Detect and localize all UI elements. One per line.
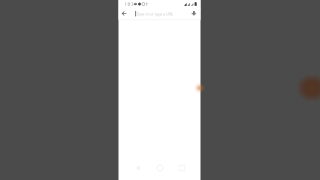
button[interactable]: Back [119, 8, 129, 19]
button[interactable]: Voice search [189, 8, 199, 19]
staticText: Search or type a URL [137, 11, 173, 17]
button[interactable]: Search or type a URL [137, 8, 187, 19]
